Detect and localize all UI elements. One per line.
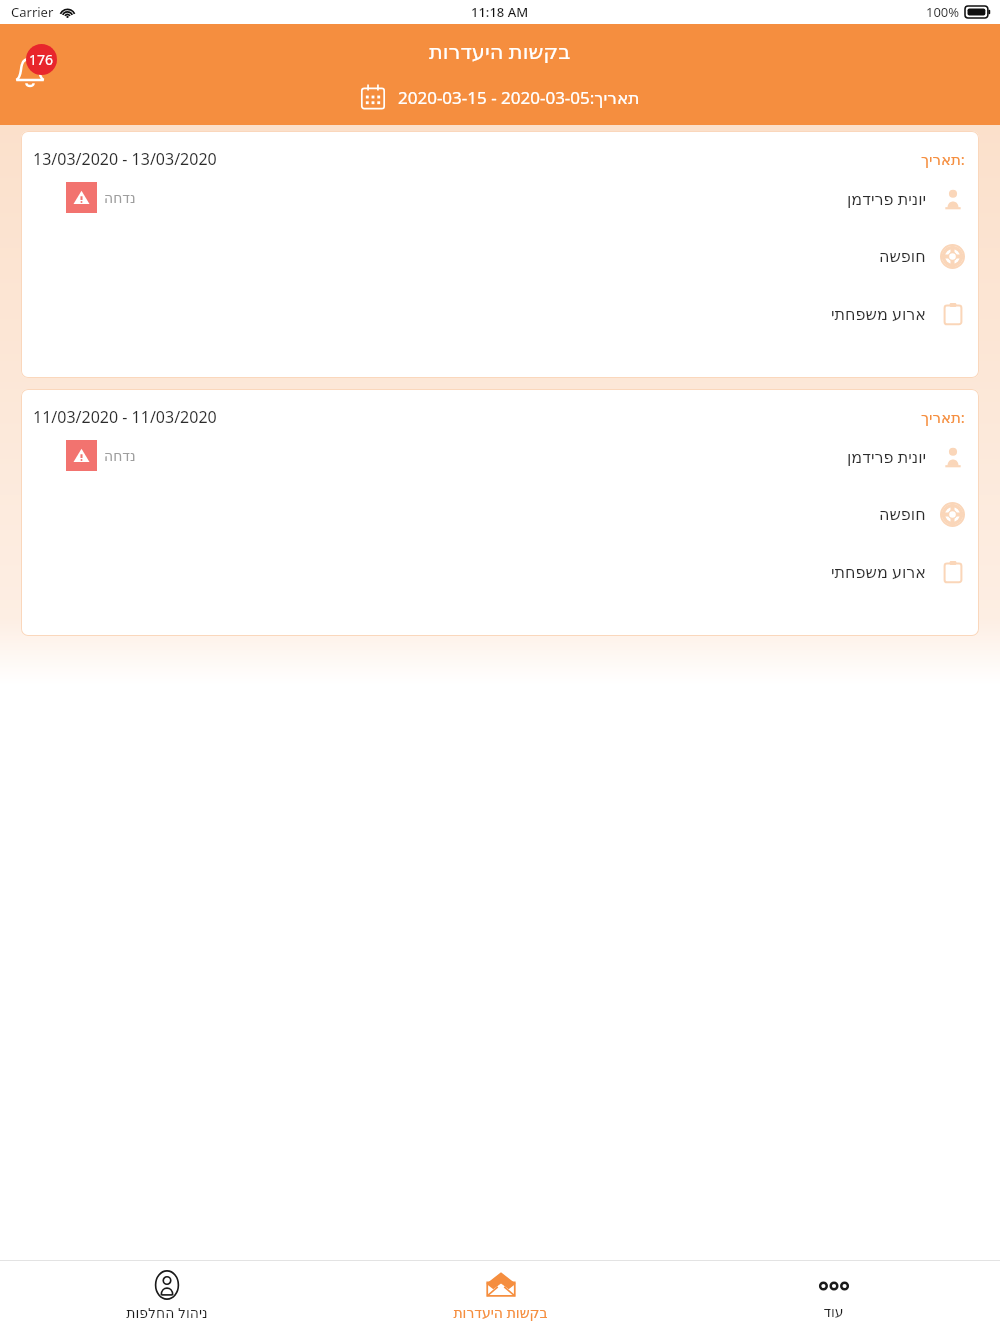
staticText: תאריך: xyxy=(921,407,965,427)
staticText: 176 xyxy=(29,50,54,69)
staticText: 100% xyxy=(926,3,960,21)
staticText: חופשה xyxy=(879,505,926,524)
staticText: ניהול החלפות xyxy=(126,1303,208,1322)
staticText: נדחה xyxy=(104,190,136,206)
staticText: 11/03/2020 - 11/03/2020 xyxy=(33,406,217,428)
button[interactable]: בקשות היעדרות xyxy=(334,1261,667,1328)
staticText: Carrier xyxy=(11,3,54,21)
button[interactable]: Notifications xyxy=(8,44,68,104)
staticText: בקשות היעדרות xyxy=(429,37,571,66)
staticText: 11:18 AM xyxy=(471,3,529,21)
button[interactable]: תאריך: xyxy=(21,131,979,378)
staticText: ארוע משפחתי xyxy=(831,303,927,325)
staticText: בקשות היעדרות xyxy=(453,1303,548,1322)
button[interactable]: תאריך: xyxy=(21,389,979,636)
staticText: 13/03/2020 - 13/03/2020 xyxy=(33,148,217,170)
staticText: תאריך: xyxy=(921,149,965,169)
staticText: תאריך:2020-03-05 - 2020-03-15 xyxy=(398,86,640,109)
staticText: חופשה xyxy=(879,247,926,266)
staticText: יונית פרידמן xyxy=(847,188,927,210)
staticText: ארוע משפחתי xyxy=(831,561,927,583)
button[interactable]: עוד xyxy=(667,1261,1000,1328)
staticText: יונית פרידמן xyxy=(847,446,927,468)
button[interactable]: ניהול החלפות xyxy=(0,1261,334,1328)
button[interactable]: תאריך:2020-03-05 - 2020-03-15 xyxy=(360,84,640,110)
staticText: נדחה xyxy=(104,448,136,464)
staticText: עוד xyxy=(823,1304,844,1320)
